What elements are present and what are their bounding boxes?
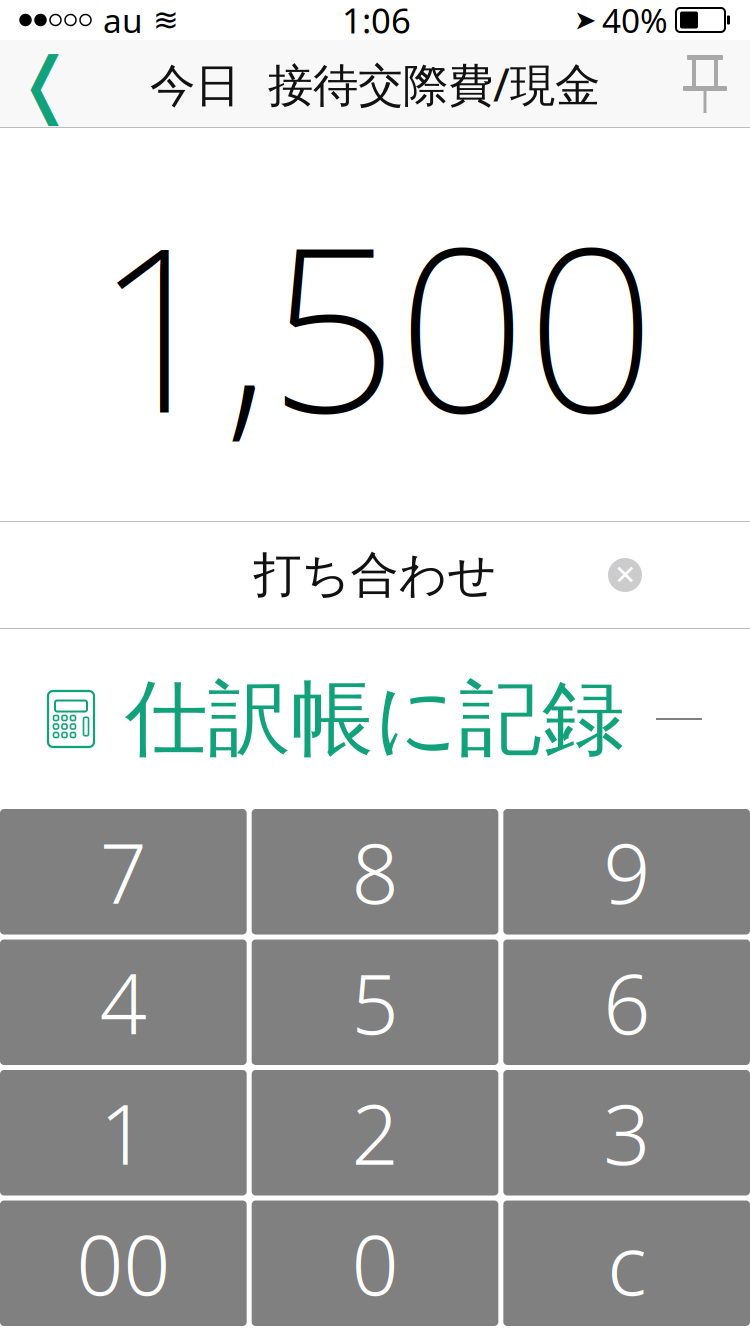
staticText: c — [607, 1208, 646, 1318]
button[interactable]: 7 — [0, 809, 247, 934]
staticText: 1,500 — [94, 174, 655, 475]
button[interactable]: 3 — [503, 1070, 750, 1195]
staticText: 40% — [602, 0, 668, 42]
button[interactable]: 8 — [252, 809, 498, 934]
button[interactable]: c — [503, 1200, 750, 1326]
staticText: 0 — [351, 1208, 398, 1318]
staticText: 1:06 — [342, 0, 411, 43]
button[interactable]: 1 — [0, 1070, 247, 1195]
staticText: ❬ — [15, 43, 75, 125]
button[interactable]: 2 — [252, 1070, 498, 1195]
button[interactable]: Clear memo — [588, 538, 662, 612]
staticText: 5 — [351, 947, 398, 1057]
staticText: au — [103, 0, 143, 42]
staticText: 7 — [100, 817, 147, 927]
button[interactable]: Back — [0, 40, 90, 128]
button[interactable]: 5 — [252, 939, 498, 1065]
staticText: ≋ — [153, 3, 179, 37]
staticText: ✕ — [614, 560, 636, 590]
button[interactable]: 4 — [0, 939, 247, 1065]
button[interactable]: 6 — [503, 939, 750, 1065]
staticText: ➤ — [574, 5, 596, 35]
staticText: 打ち合わせ — [253, 545, 496, 604]
staticText: 仕訳帳に記録 — [125, 668, 625, 770]
staticText: 4 — [100, 947, 147, 1057]
staticText: 00 — [76, 1208, 170, 1318]
staticText: 2 — [351, 1078, 398, 1188]
staticText: 6 — [603, 947, 650, 1057]
staticText: 8 — [351, 817, 398, 927]
staticText: 9 — [603, 817, 650, 927]
button[interactable]: 仕訳帳に記録 — [0, 629, 750, 809]
button[interactable]: 0 — [252, 1200, 498, 1326]
button[interactable]: 9 — [503, 809, 750, 934]
staticText: 1 — [100, 1078, 147, 1188]
staticText: 今日 接待交際費/現金 — [150, 54, 600, 114]
button[interactable]: Pin — [660, 40, 750, 128]
button[interactable]: 00 — [0, 1200, 247, 1326]
staticText: 3 — [603, 1078, 650, 1188]
